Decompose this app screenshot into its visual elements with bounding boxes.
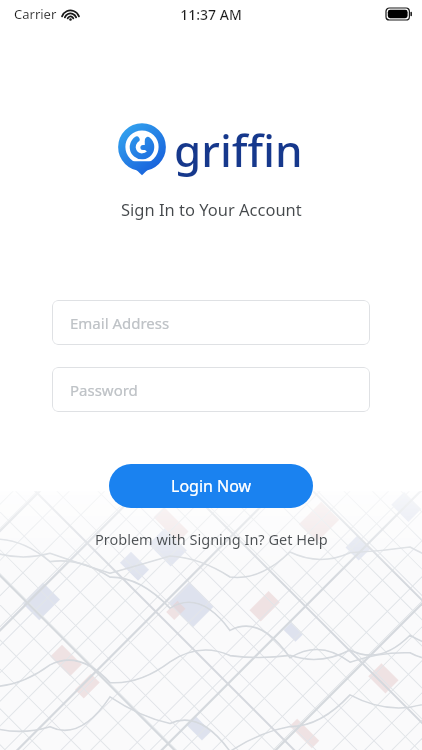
other: Griffin logo <box>120 124 164 177</box>
staticText: 11:37 AM <box>180 5 242 24</box>
staticText: Carrier <box>14 5 57 23</box>
staticText: Login Now <box>171 475 252 497</box>
staticText: griffin <box>174 120 303 180</box>
staticText: Sign In to Your Account <box>121 198 302 220</box>
button[interactable]: Email Address <box>52 300 370 345</box>
staticText: Problem with Signing In? Get Help <box>95 529 328 549</box>
button[interactable]: Password <box>52 367 370 412</box>
staticText: Email Address <box>70 313 170 333</box>
button[interactable]: Problem with Signing In? Get Help <box>87 525 336 553</box>
button[interactable]: Login Now <box>109 464 313 508</box>
staticText: Password <box>70 380 138 400</box>
